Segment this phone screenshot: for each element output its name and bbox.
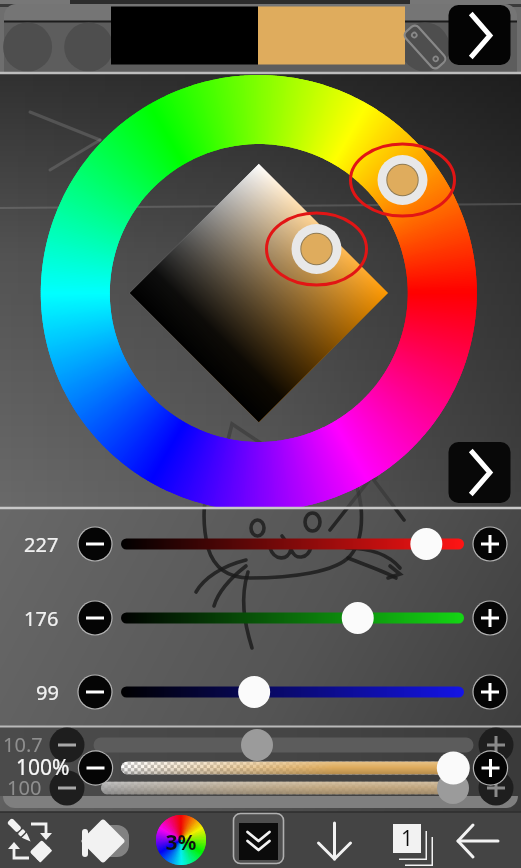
button[interactable]: Back bbox=[452, 812, 518, 868]
staticText: 99 bbox=[36, 679, 59, 706]
button[interactable]: Primary colour black bbox=[111, 8, 258, 66]
button[interactable]: Download bbox=[303, 812, 369, 868]
staticText: 100% bbox=[16, 753, 70, 782]
button[interactable]: Collapse panel bbox=[231, 812, 286, 868]
staticText: 227 bbox=[24, 531, 59, 558]
button[interactable]: Edit colour bbox=[401, 23, 449, 71]
button[interactable]: Next bbox=[448, 6, 510, 65]
button[interactable]: Decrease value bbox=[78, 526, 114, 562]
button[interactable]: Secondary colour bbox=[258, 8, 405, 66]
button[interactable]: Decrease value bbox=[78, 600, 114, 636]
button[interactable]: Colour bbox=[148, 812, 214, 868]
button[interactable]: Increase value bbox=[472, 526, 508, 562]
button[interactable]: Colour channel slider bbox=[118, 528, 468, 560]
button[interactable]: Undo colour bbox=[4, 23, 52, 71]
button[interactable]: Fill bbox=[71, 812, 139, 868]
button[interactable]: Colour channel slider bbox=[118, 602, 468, 634]
button[interactable]: Increase value bbox=[472, 674, 508, 710]
button[interactable]: Expand color wheel bbox=[448, 442, 510, 503]
button[interactable]: Swap brush and eraser bbox=[2, 812, 70, 868]
staticText: 100 bbox=[7, 774, 42, 801]
button[interactable]: Opacity slider bbox=[118, 752, 468, 784]
button[interactable]: Layers bbox=[378, 812, 444, 868]
staticText: 3% bbox=[155, 828, 207, 854]
button[interactable]: Increase value bbox=[472, 600, 508, 636]
staticText: 176 bbox=[24, 605, 59, 632]
staticText: 10.7 bbox=[3, 731, 43, 758]
button[interactable]: Colour channel slider bbox=[118, 676, 468, 708]
button[interactable]: Decrease value bbox=[78, 674, 114, 710]
button[interactable]: Decrease opacity bbox=[78, 750, 114, 786]
button[interactable]: Redo colour bbox=[65, 23, 113, 71]
staticText: 1 bbox=[401, 824, 414, 853]
button[interactable]: Increase opacity bbox=[472, 750, 508, 786]
